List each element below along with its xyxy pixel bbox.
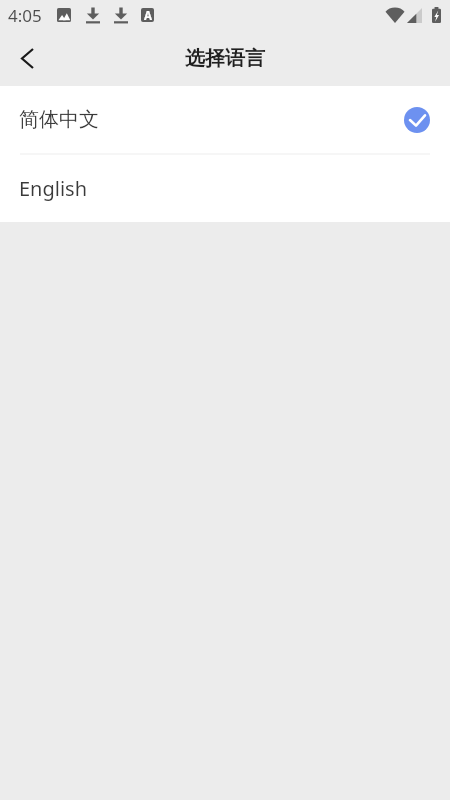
staticText: 选择语言: [185, 46, 265, 71]
staticText: 简体中文: [19, 107, 99, 132]
staticText: A: [144, 8, 152, 22]
button[interactable]: Back: [3, 34, 51, 82]
button[interactable]: 简体中文: [0, 86, 450, 153]
staticText: 4:05: [8, 4, 42, 27]
staticText: English: [19, 175, 88, 202]
button[interactable]: English: [0, 155, 450, 222]
other: Selected: [404, 107, 430, 133]
